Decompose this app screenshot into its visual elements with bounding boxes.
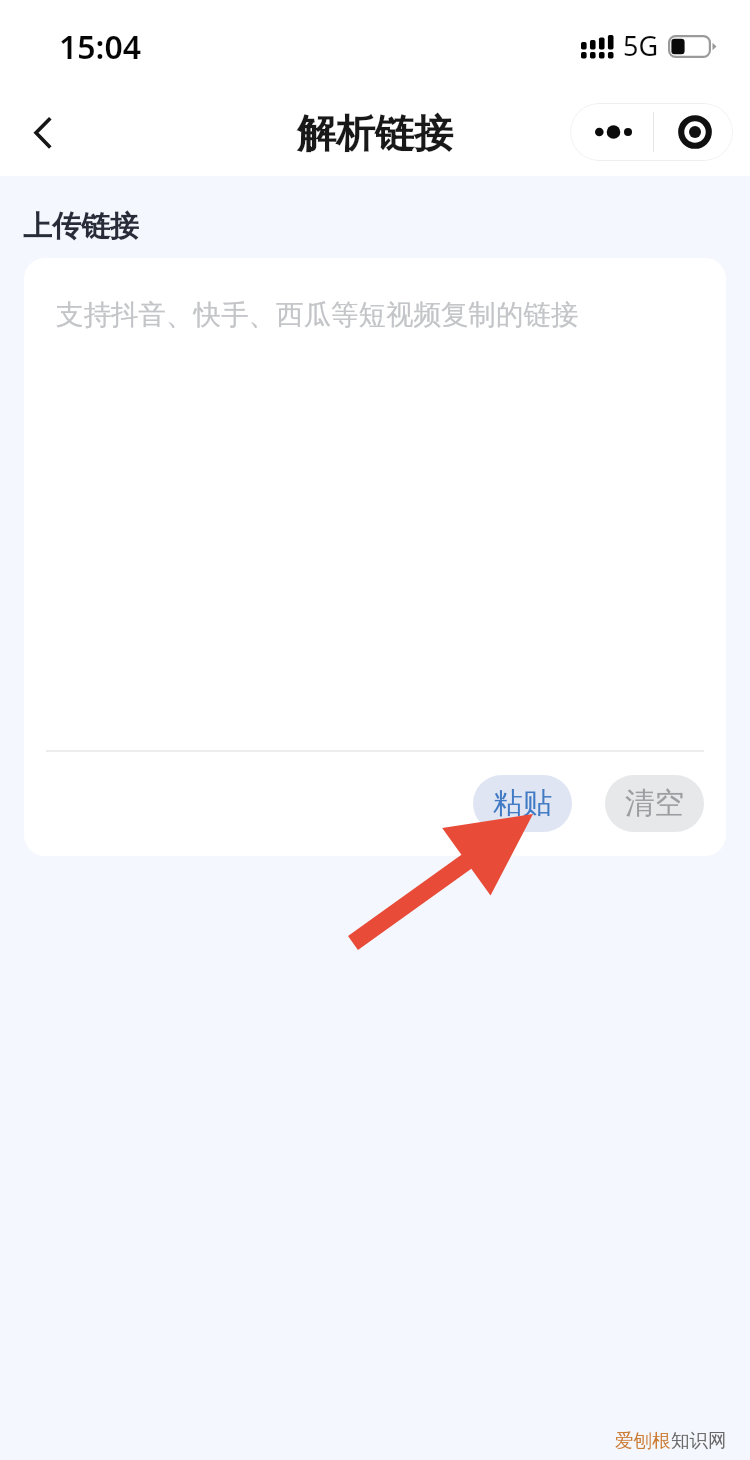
- button[interactable]: 粘贴: [473, 775, 572, 832]
- button[interactable]: Close mini program: [654, 103, 733, 161]
- button[interactable]: Back: [0, 88, 88, 176]
- button[interactable]: More options: [570, 103, 653, 161]
- staticText: 知识网: [671, 1429, 727, 1452]
- staticText: 爱刨根: [615, 1429, 671, 1452]
- staticText: 支持抖音、快手、西瓜等短视频复制的链接: [56, 298, 579, 333]
- staticText: 粘贴: [493, 785, 552, 822]
- staticText: 上传链接: [23, 208, 139, 245]
- staticText: 15:04: [59, 25, 142, 69]
- staticText: 5G: [623, 27, 659, 64]
- staticText: 解析链接: [297, 109, 453, 158]
- staticText: 清空: [625, 785, 684, 822]
- button[interactable]: 清空: [605, 775, 704, 832]
